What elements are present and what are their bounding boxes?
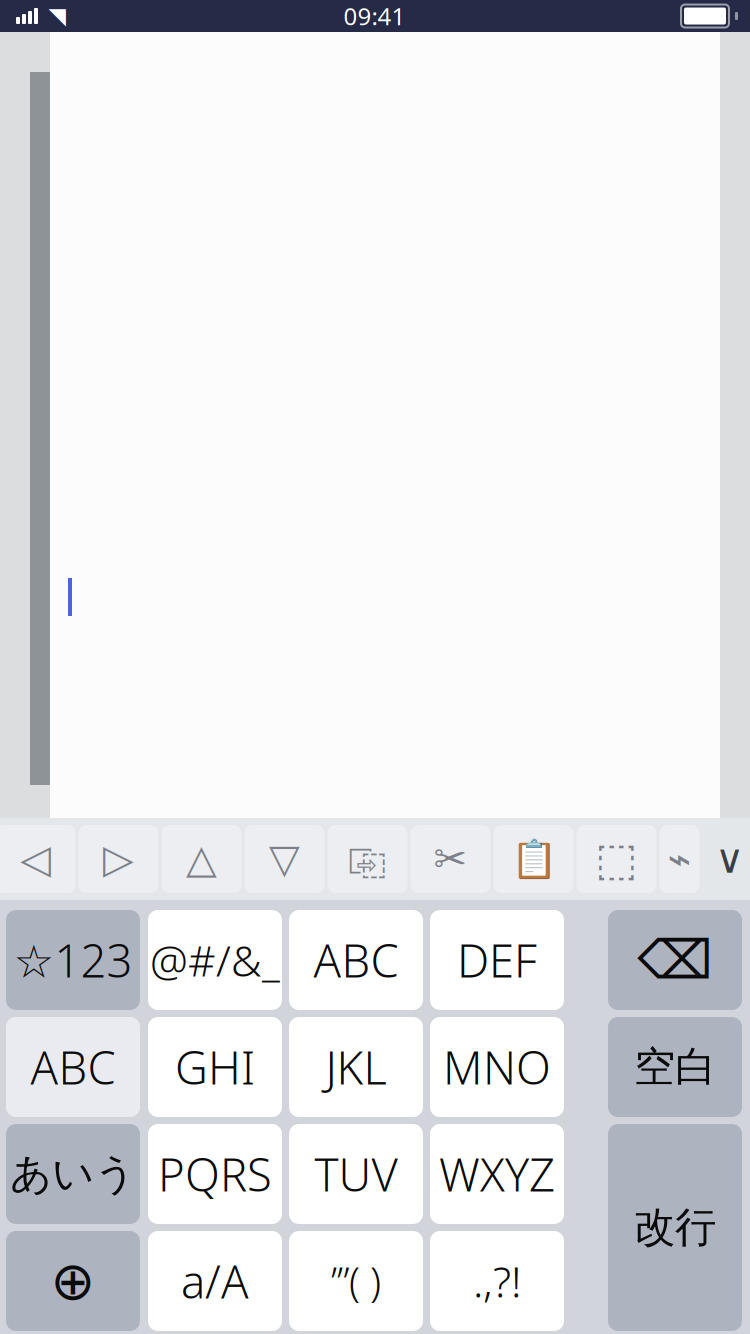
button[interactable]: TUV — [289, 1124, 423, 1224]
button[interactable]: JKL — [289, 1017, 423, 1117]
staticText: JKL — [325, 1037, 386, 1097]
button[interactable]: Cut — [410, 825, 490, 893]
button[interactable]: More — [659, 825, 699, 893]
staticText: ⌁ — [667, 836, 691, 882]
staticText: PQRS — [158, 1144, 272, 1204]
staticText: ▷ — [103, 836, 134, 882]
button[interactable]: .,?! — [430, 1231, 564, 1331]
button[interactable]: あいう — [6, 1124, 140, 1224]
button[interactable]: Move up — [161, 825, 241, 893]
staticText: GHI — [175, 1037, 255, 1097]
button[interactable]: Copy — [327, 825, 407, 893]
button[interactable]: Move down — [244, 825, 324, 893]
button[interactable]: ☆123 — [6, 910, 140, 1010]
button[interactable]: ABC — [6, 1017, 140, 1117]
staticText: TUV — [314, 1144, 397, 1204]
button[interactable]: Hide keyboard — [702, 825, 750, 893]
staticText: a/A — [181, 1251, 249, 1311]
staticText: ▽ — [269, 836, 300, 882]
button[interactable]: @#/&_ — [148, 910, 282, 1010]
staticText: ∨ — [715, 836, 744, 882]
staticText: ⎘ — [347, 816, 387, 902]
button[interactable]: Next keyboard — [6, 1231, 140, 1331]
button[interactable]: ’”( ) — [289, 1231, 423, 1331]
button[interactable]: ABC — [289, 910, 423, 1010]
button[interactable]: 改行 — [608, 1124, 742, 1331]
button[interactable]: a/A — [148, 1231, 282, 1331]
button[interactable]: WXYZ — [430, 1124, 564, 1224]
staticText: ’”( ) — [331, 1254, 381, 1307]
button[interactable]: PQRS — [148, 1124, 282, 1224]
button[interactable]: Select — [576, 825, 656, 893]
button[interactable]: Paste — [493, 825, 573, 893]
staticText: MNO — [443, 1037, 551, 1097]
staticText: ☆123 — [13, 930, 132, 990]
staticText: ⌫ — [637, 930, 712, 990]
button[interactable]: 空白 — [608, 1017, 742, 1117]
staticText: ⊕ — [50, 1251, 95, 1311]
staticText: 改行 — [634, 1202, 716, 1253]
button[interactable]: MNO — [430, 1017, 564, 1117]
staticText: ◥ — [48, 3, 65, 29]
button[interactable]: DEF — [430, 910, 564, 1010]
staticText: ⬚ — [595, 833, 638, 885]
staticText: DEF — [457, 930, 537, 990]
staticText: △ — [186, 836, 217, 882]
staticText: ABC — [30, 1037, 115, 1097]
staticText: ✂ — [433, 836, 467, 882]
button[interactable]: GHI — [148, 1017, 282, 1117]
staticText: あいう — [10, 1149, 136, 1199]
staticText: ◁ — [20, 836, 51, 882]
button[interactable]: Move left — [0, 825, 75, 893]
staticText: .,?! — [473, 1253, 521, 1309]
staticText: WXYZ — [439, 1144, 555, 1204]
staticText: 📋 — [510, 838, 556, 880]
button[interactable]: Delete — [608, 910, 742, 1010]
button[interactable]: Move right — [78, 825, 158, 893]
staticText: @#/&_ — [150, 932, 280, 988]
staticText: 09:41 — [343, 0, 405, 32]
staticText: ABC — [313, 930, 398, 990]
staticText: 空白 — [634, 1042, 716, 1092]
